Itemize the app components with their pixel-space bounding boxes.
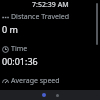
staticText: 0.0 km/h — [2, 87, 40, 99]
other: Average speed — [2, 78, 9, 85]
button[interactable]: Time — [0, 44, 100, 67]
staticText: 0 m — [2, 23, 18, 35]
staticText: Time — [11, 44, 28, 54]
button[interactable]: Page 1 — [41, 92, 47, 98]
other: Distance — [2, 14, 9, 21]
staticText: 00:01:36 — [2, 55, 38, 67]
button[interactable]: Average speed — [0, 76, 100, 99]
other: Time — [2, 46, 9, 53]
button[interactable]: Distance — [0, 12, 100, 35]
staticText: Average speed — [11, 76, 60, 86]
staticText: 7:52:39 AM — [32, 0, 69, 10]
button[interactable]: Page 2 — [55, 93, 60, 98]
staticText: Distance Traveled — [11, 12, 69, 22]
